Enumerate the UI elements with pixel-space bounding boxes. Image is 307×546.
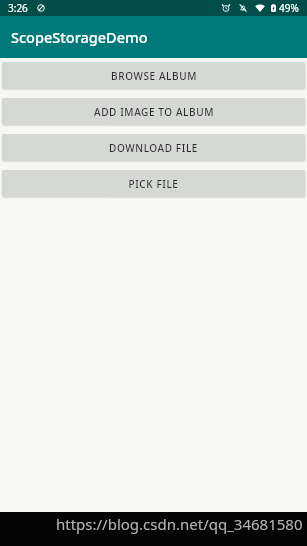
button[interactable]: PICK FILE: [2, 170, 305, 197]
button[interactable]: BROWSE ALBUM: [2, 62, 305, 89]
staticText: BROWSE ALBUM: [111, 69, 197, 83]
staticText: https://blog.csdn.net/qq_34681580: [56, 514, 303, 534]
button[interactable]: ADD IMAGE TO ALBUM: [2, 98, 305, 125]
staticText: DOWNLOAD FILE: [109, 141, 198, 155]
staticText: 49%: [279, 1, 299, 15]
staticText: 3:26: [8, 1, 28, 15]
staticText: ADD IMAGE TO ALBUM: [94, 105, 214, 119]
staticText: PICK FILE: [128, 177, 179, 191]
button[interactable]: DOWNLOAD FILE: [2, 134, 305, 161]
staticText: ScopeStorageDemo: [11, 27, 148, 47]
